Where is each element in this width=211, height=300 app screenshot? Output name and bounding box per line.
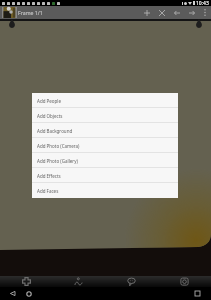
button[interactable]: Home: [23, 287, 35, 300]
button[interactable]: Undo: [169, 6, 184, 19]
button[interactable]: Add object: [0, 276, 52, 287]
button[interactable]: Speech bubble: [105, 276, 158, 287]
button[interactable]: Back: [6, 287, 18, 300]
button[interactable]: Add Photo (Gallery): [32, 153, 178, 168]
button[interactable]: Recent apps: [191, 287, 203, 300]
staticText: 10:43: [196, 0, 209, 6]
button[interactable]: Redo: [184, 6, 199, 19]
button[interactable]: More options: [199, 6, 210, 19]
staticText: Add People: [37, 98, 62, 104]
button[interactable]: Add Faces: [32, 183, 178, 198]
button[interactable]: People: [52, 276, 105, 287]
staticText: Add Objects: [37, 113, 63, 119]
button[interactable]: Add Objects: [32, 108, 178, 123]
staticText: Add Photo (Camera): [37, 143, 80, 149]
button[interactable]: Add: [139, 6, 154, 19]
staticText: Add Effects: [37, 173, 61, 179]
button[interactable]: Add Background: [32, 123, 178, 138]
staticText: Add Background: [37, 128, 73, 134]
staticText: Frame 1/1: [18, 9, 43, 16]
staticText: Add Photo (Gallery): [37, 158, 78, 164]
button[interactable]: Frame thumbnail: [2, 7, 17, 18]
button[interactable]: Delete: [154, 6, 169, 19]
button[interactable]: Photo: [158, 276, 211, 287]
button[interactable]: Add Effects: [32, 168, 178, 183]
staticText: Add Faces: [37, 188, 59, 194]
button[interactable]: Add People: [32, 93, 178, 108]
button[interactable]: Add Photo (Camera): [32, 138, 178, 153]
